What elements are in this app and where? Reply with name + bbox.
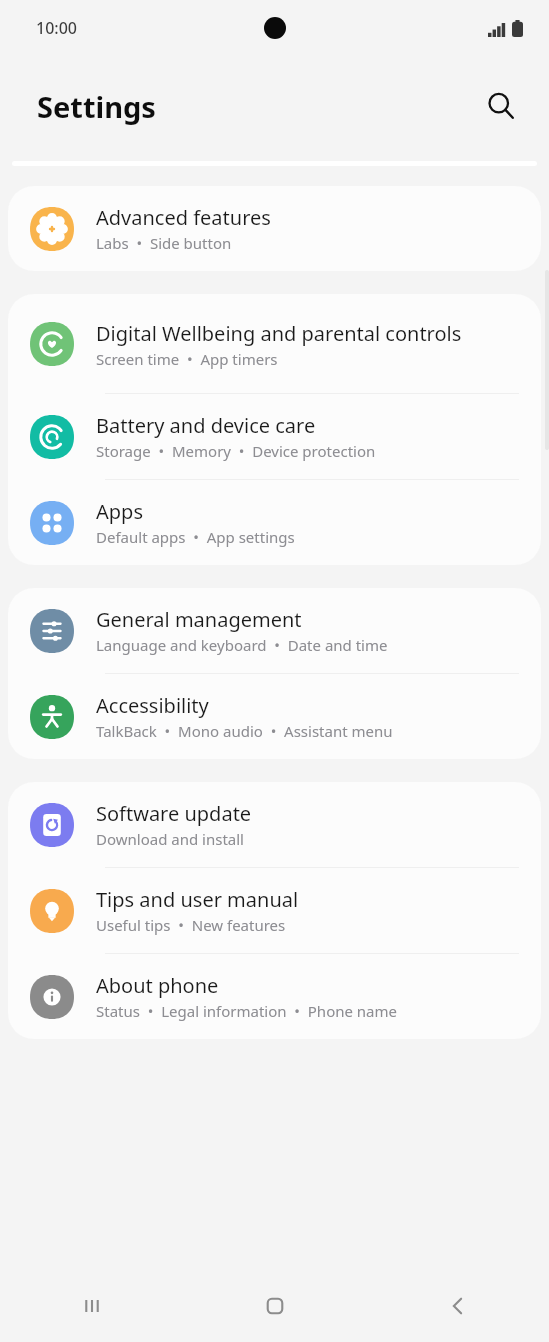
staticText: Battery and device care (96, 412, 316, 439)
staticText: Software update (96, 800, 252, 827)
staticText: Screen time • App timers (96, 349, 278, 369)
button[interactable]: Back (366, 1269, 549, 1342)
button[interactable]: Battery and device care (8, 394, 541, 479)
staticText: Accessibility (96, 692, 209, 719)
button[interactable]: Digital Wellbeing and parental controls (8, 294, 541, 393)
button[interactable]: Accessibility (8, 674, 541, 759)
staticText: TalkBack • Mono audio • Assistant menu (96, 721, 393, 741)
staticText: Apps (96, 498, 143, 525)
staticText: Storage • Memory • Device protection (96, 441, 376, 461)
staticText: Status • Legal information • Phone name (96, 1001, 398, 1021)
staticText: Tips and user manual (96, 886, 299, 913)
staticText: Default apps • App settings (96, 527, 295, 547)
staticText: General management (96, 606, 302, 633)
button[interactable]: About phone (8, 954, 541, 1039)
staticText: Advanced features (96, 204, 271, 231)
staticText: Language and keyboard • Date and time (96, 635, 388, 655)
staticText: Labs • Side button (96, 233, 232, 253)
button[interactable]: Recent apps (0, 1269, 183, 1342)
button[interactable]: Advanced features (8, 186, 541, 271)
button[interactable]: Apps (8, 480, 541, 565)
button[interactable]: General management (8, 588, 541, 673)
staticText: Useful tips • New features (96, 915, 286, 935)
staticText: 10:00 (36, 17, 77, 39)
button[interactable]: Software update (8, 782, 541, 867)
staticText: About phone (96, 972, 219, 999)
button[interactable]: Search (477, 82, 525, 130)
staticText: Download and install (96, 829, 244, 849)
staticText: Settings (37, 87, 156, 126)
button[interactable]: Tips and user manual (8, 868, 541, 953)
button[interactable]: Home (183, 1269, 366, 1342)
staticText: Digital Wellbeing and parental controls (96, 320, 462, 347)
